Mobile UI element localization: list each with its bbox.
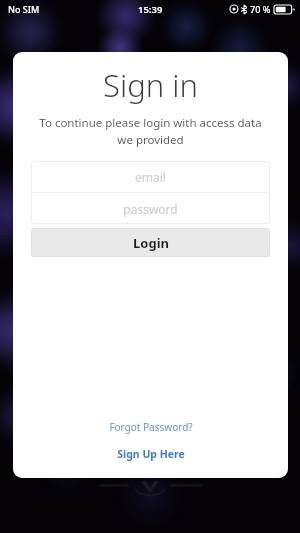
staticText: Forgot Password?	[109, 420, 193, 434]
staticText: Sign in	[103, 64, 198, 106]
staticText: 70 %	[250, 3, 271, 15]
button[interactable]: Forgot Password?	[99, 417, 203, 437]
staticText: To continue please login with access dat…	[31, 115, 270, 147]
button[interactable]: Login	[31, 228, 270, 257]
staticText: Login	[133, 234, 169, 252]
staticText: Sign Up Here	[117, 447, 185, 461]
staticText: email	[135, 169, 166, 185]
button[interactable]: email	[31, 161, 270, 192]
staticText: No SIM	[8, 3, 40, 15]
staticText: 15:39	[138, 3, 163, 16]
button[interactable]: password	[31, 193, 270, 224]
button[interactable]: Sign Up Here	[107, 444, 195, 464]
staticText: password	[123, 201, 178, 217]
